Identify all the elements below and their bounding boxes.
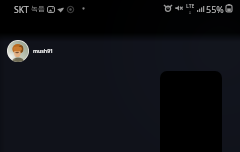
button[interactable]: mush91 — [7, 40, 54, 62]
staticText: 55% — [206, 3, 224, 15]
button[interactable]: Twitter notification — [57, 7, 64, 13]
button[interactable]: Sound muted — [175, 4, 183, 12]
staticText: ⁞⁞ — [189, 10, 192, 15]
button[interactable]: Battery 55 percent — [226, 4, 232, 12]
button[interactable]: Alarm set — [164, 4, 172, 12]
button[interactable]: Mobile signal — [197, 5, 205, 12]
staticText: 녹음 — [31, 4, 45, 13]
staticText: mush91 — [33, 47, 54, 54]
button[interactable]: Notification — [67, 6, 74, 13]
staticText: SKT — [14, 4, 29, 16]
staticText: LTE — [186, 3, 195, 10]
button[interactable]: Screen recording — [47, 6, 55, 13]
